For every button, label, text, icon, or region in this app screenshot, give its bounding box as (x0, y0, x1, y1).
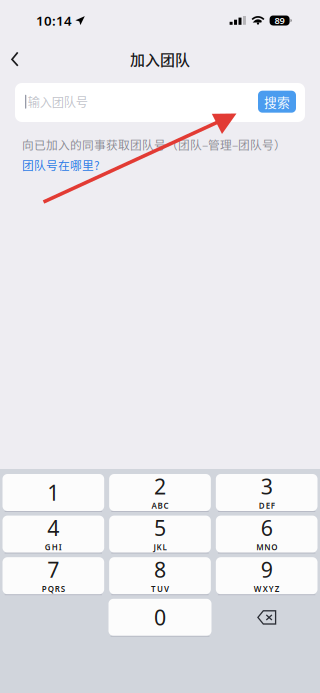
staticText: 9 (261, 555, 273, 583)
staticText: J K L (153, 542, 166, 553)
staticText: 加入团队 (130, 48, 190, 70)
staticText: A B C (151, 500, 168, 511)
button[interactable]: 0 (108, 599, 211, 637)
button[interactable]: 6 (216, 516, 317, 554)
staticText: P Q R S (42, 584, 65, 594)
staticText: 向已加入的同事获取团队号（团队–管理–团队号） (22, 136, 286, 153)
button[interactable]: Back (0, 42, 35, 75)
button[interactable]: 5 (109, 516, 211, 554)
button[interactable]: 团队号在哪里? (22, 156, 100, 173)
button[interactable]: Delete (216, 599, 317, 637)
button[interactable]: 7 (2, 557, 104, 595)
staticText: 5 (154, 514, 166, 542)
button[interactable]: 2 (109, 474, 211, 512)
staticText: 团队号在哪里? (22, 156, 100, 173)
staticText: W X Y Z (254, 584, 280, 594)
staticText: 3 (261, 472, 273, 500)
button[interactable]: 3 (216, 474, 317, 512)
button[interactable]: 8 (109, 557, 211, 595)
staticText: 0 (154, 603, 166, 631)
staticText: 89 (275, 14, 285, 27)
staticText: 1 (47, 478, 59, 507)
staticText: 8 (154, 555, 166, 583)
staticText: 6 (261, 514, 273, 542)
staticText: 2 (154, 472, 166, 500)
staticText: 搜索 (264, 92, 290, 111)
staticText: D E F (259, 500, 275, 511)
staticText: M N O (256, 542, 277, 553)
staticText: T U V (151, 584, 169, 594)
staticText: G H I (45, 542, 62, 553)
staticText: 输入团队号 (28, 93, 88, 111)
staticText: 4 (47, 514, 59, 542)
button[interactable]: 搜索 (258, 91, 296, 113)
button[interactable]: 1 (2, 474, 104, 512)
button[interactable]: 4 (2, 516, 104, 554)
staticText: 10:14 (36, 12, 72, 29)
button[interactable]: 9 (216, 557, 317, 595)
staticText: 7 (47, 555, 59, 583)
